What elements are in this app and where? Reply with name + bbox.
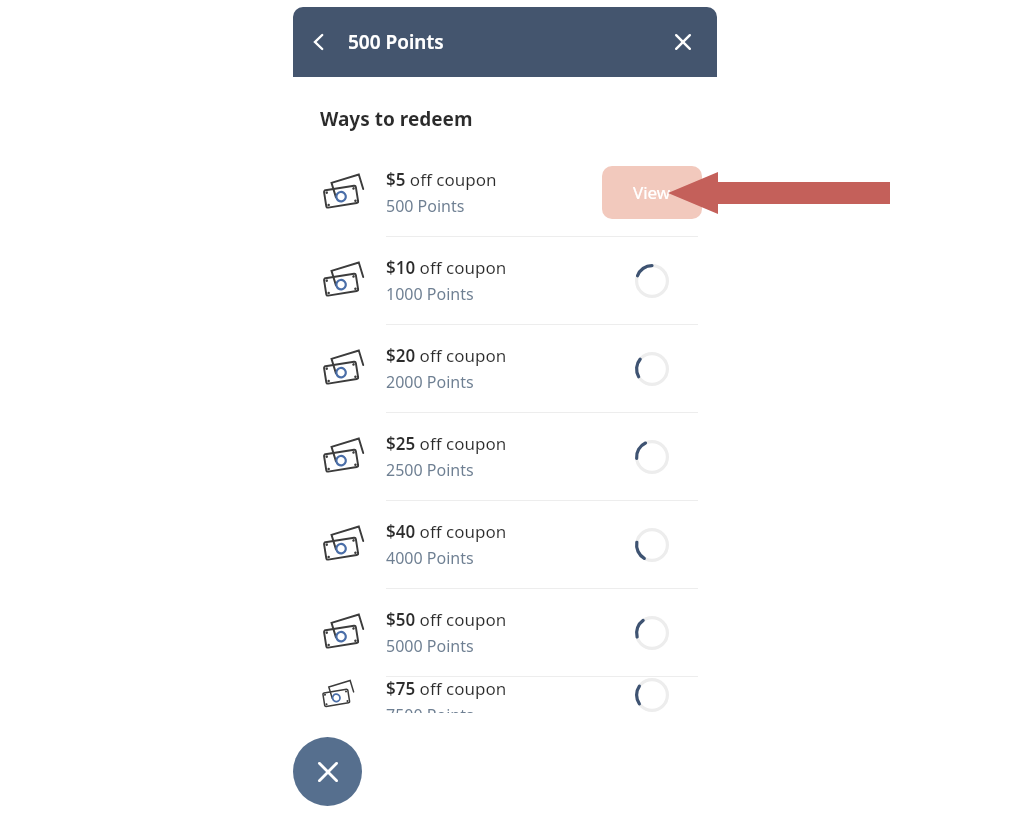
staticText: 7500 Points [386, 704, 474, 713]
button[interactable]: $40 off coupon [293, 501, 717, 588]
staticText: $20 off coupon [386, 344, 507, 367]
button[interactable]: View [602, 166, 702, 219]
staticText: Ways to redeem [320, 106, 473, 132]
staticText: View [633, 181, 671, 204]
staticText: 500 Points [386, 195, 465, 217]
staticText: $40 off coupon [386, 520, 507, 543]
staticText: 5000 Points [386, 635, 474, 657]
staticText: 1000 Points [386, 283, 474, 305]
button[interactable]: $25 off coupon [293, 413, 717, 500]
button[interactable]: $10 off coupon [293, 237, 717, 324]
staticText: 4000 Points [386, 547, 474, 569]
button[interactable]: $75 off coupon [293, 677, 717, 713]
staticText: $25 off coupon [386, 432, 507, 455]
button[interactable]: $20 off coupon [293, 325, 717, 412]
button[interactable]: Close [661, 20, 705, 64]
staticText: $50 off coupon [386, 608, 507, 631]
staticText: 500 Points [348, 29, 444, 55]
button[interactable]: Dismiss [293, 737, 362, 806]
staticText: $5 off coupon [386, 168, 497, 191]
button[interactable]: Back [297, 20, 341, 64]
staticText: 2000 Points [386, 371, 474, 393]
staticText: 2500 Points [386, 459, 474, 481]
staticText: $75 off coupon [386, 677, 507, 700]
button[interactable]: $5 off coupon [293, 149, 717, 236]
button[interactable]: $50 off coupon [293, 589, 717, 676]
staticText: $10 off coupon [386, 256, 507, 279]
